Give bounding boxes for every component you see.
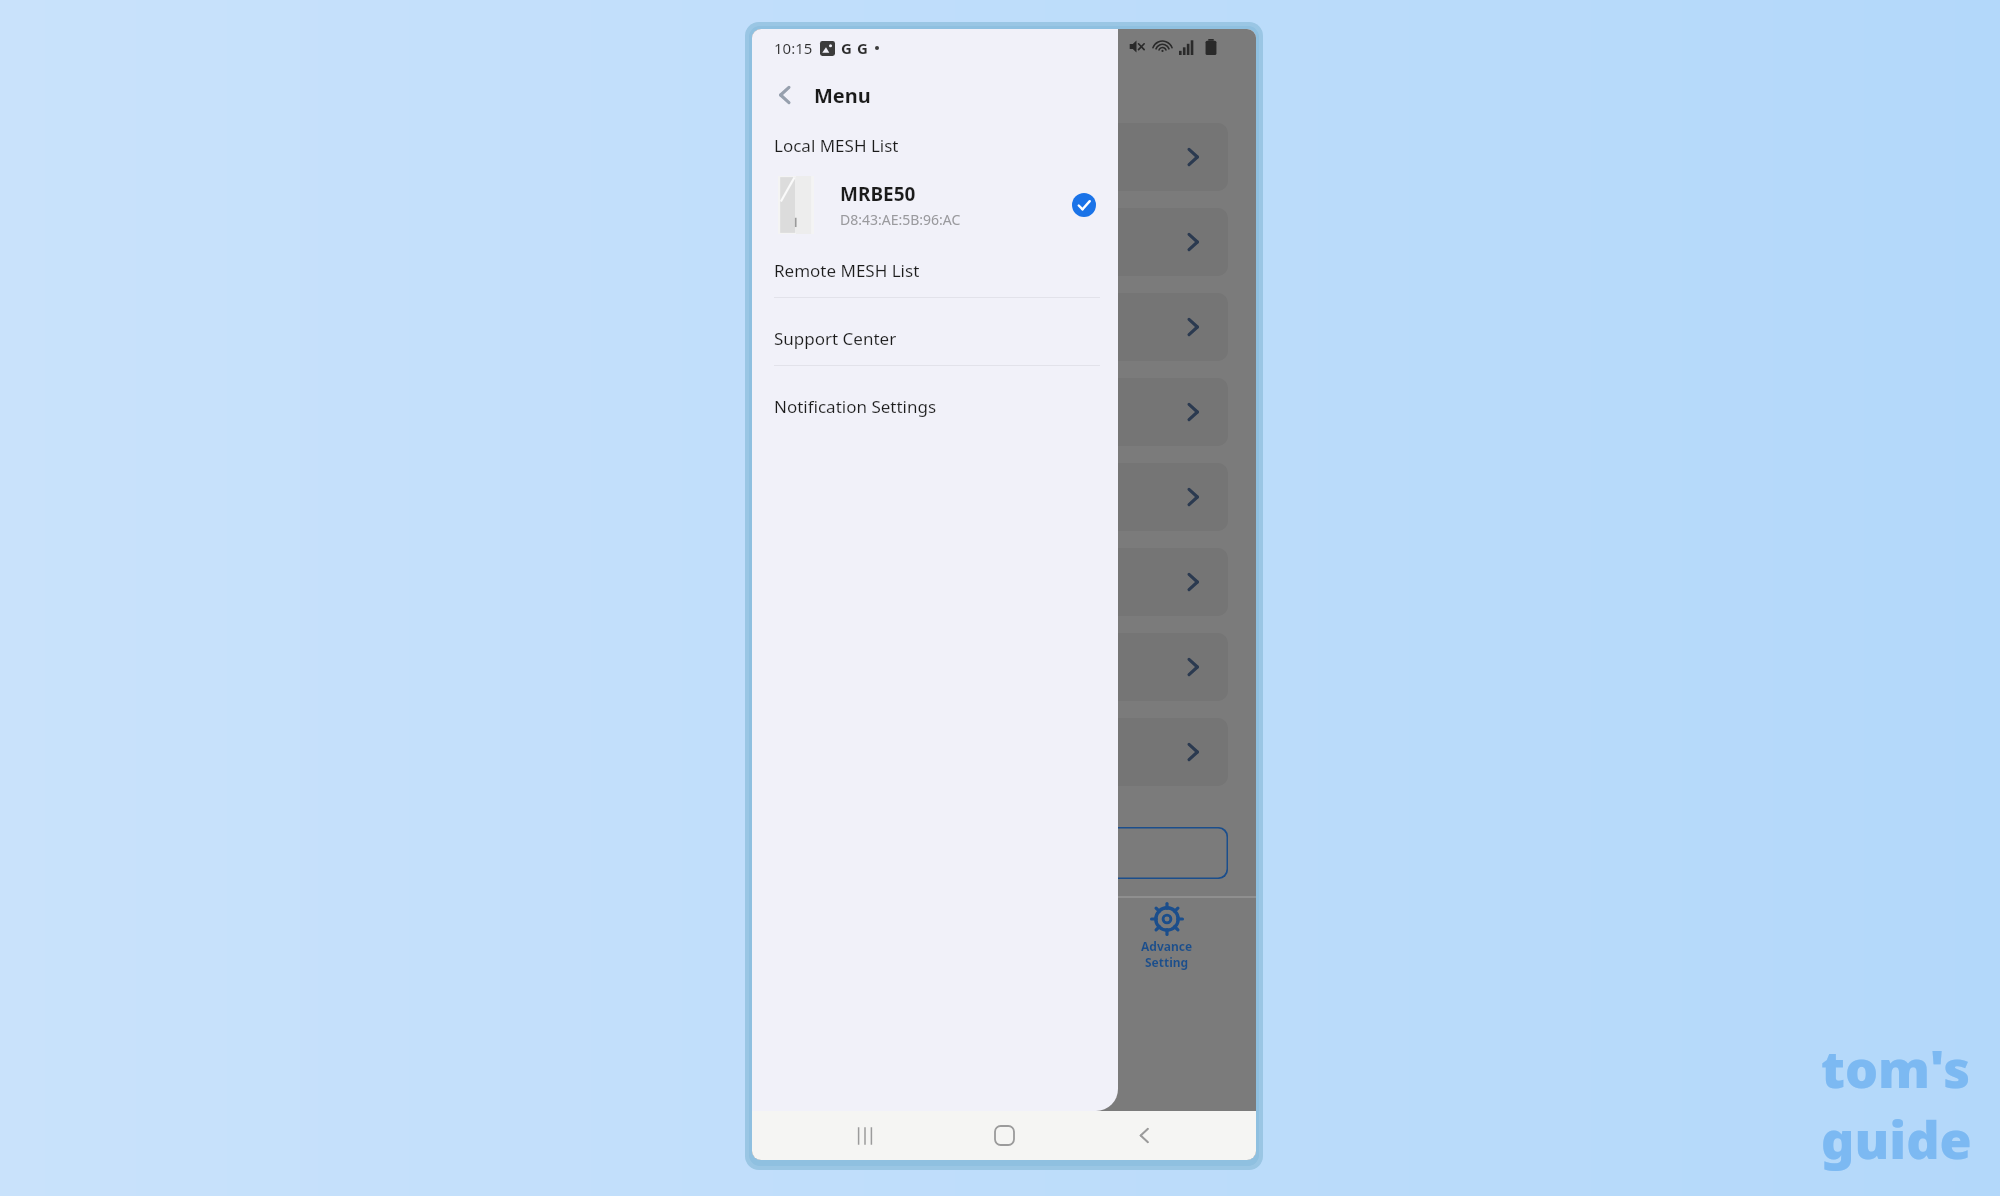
button[interactable] bbox=[902, 633, 1228, 701]
staticText: MRBE50 bbox=[840, 181, 916, 207]
button[interactable]: Support Center bbox=[752, 311, 1118, 365]
button[interactable]: Back bbox=[762, 72, 808, 118]
button[interactable]: Remote MESH List bbox=[752, 243, 1118, 297]
button[interactable] bbox=[902, 463, 1228, 531]
button[interactable]: Recent apps bbox=[838, 1111, 892, 1160]
staticText: Advance bbox=[1141, 938, 1193, 954]
button[interactable]: Advance bbox=[1112, 905, 1222, 970]
button[interactable]: Back bbox=[1117, 1111, 1171, 1160]
button[interactable] bbox=[902, 827, 1228, 879]
button[interactable] bbox=[902, 123, 1228, 191]
staticText: guide bbox=[1821, 1103, 1972, 1174]
staticText: Notification Settings bbox=[774, 395, 937, 418]
staticText: G bbox=[857, 38, 868, 58]
staticText: Remote MESH List bbox=[774, 259, 920, 282]
button[interactable] bbox=[902, 293, 1228, 361]
button[interactable] bbox=[902, 548, 1228, 616]
button[interactable]: MRBE50 bbox=[752, 167, 1118, 243]
button[interactable]: Home bbox=[977, 1111, 1031, 1160]
staticText: Menu bbox=[814, 82, 871, 109]
staticText: Local MESH List bbox=[774, 134, 899, 157]
staticText: D8:43:AE:5B:96:AC bbox=[840, 210, 961, 229]
staticText: G bbox=[841, 38, 852, 58]
staticText: tom's bbox=[1821, 1032, 1971, 1103]
button[interactable] bbox=[902, 718, 1228, 786]
staticText: Support Center bbox=[774, 327, 897, 350]
button[interactable]: Notification Settings bbox=[752, 379, 1118, 433]
staticText: 10:15 bbox=[774, 38, 813, 58]
button[interactable] bbox=[902, 208, 1228, 276]
button[interactable] bbox=[902, 378, 1228, 446]
staticText: Setting bbox=[1145, 954, 1189, 970]
